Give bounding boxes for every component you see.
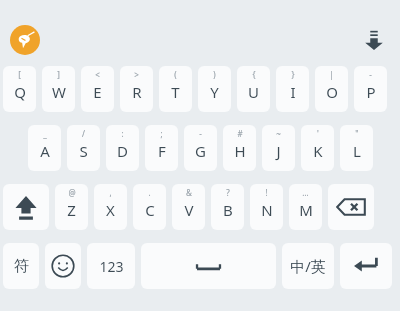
button[interactable]: Enter (340, 243, 392, 289)
staticText: - (369, 69, 372, 80)
button[interactable]: ? (211, 184, 244, 230)
staticText: / (82, 128, 85, 139)
button[interactable]: { (237, 66, 270, 112)
staticText: 符 (14, 257, 29, 276)
button[interactable]: Emoji (45, 243, 81, 289)
staticText: : (121, 128, 124, 139)
button[interactable]: < (81, 66, 114, 112)
staticText: . (148, 187, 151, 198)
button[interactable]: | (315, 66, 348, 112)
button[interactable]: - (184, 125, 217, 171)
staticText: C (145, 200, 155, 220)
staticText: N (261, 200, 273, 220)
staticText: D (117, 141, 128, 161)
button[interactable]: . (133, 184, 166, 230)
staticText: ' (317, 128, 319, 139)
button[interactable]: _ (28, 125, 61, 171)
staticText: # (237, 128, 243, 139)
staticText: _ (43, 128, 47, 139)
staticText: ! (265, 187, 268, 198)
staticText: V (184, 200, 194, 220)
button[interactable]: ( (159, 66, 192, 112)
button[interactable]: App logo (10, 25, 40, 55)
staticText: ] (57, 69, 60, 80)
staticText: ( (174, 69, 177, 80)
staticText: G (195, 141, 206, 161)
button[interactable]: ! (250, 184, 283, 230)
button[interactable]: # (223, 125, 256, 171)
staticText: A (40, 141, 50, 161)
button[interactable]: ~ (262, 125, 295, 171)
staticText: Z (67, 200, 76, 220)
staticText: F (158, 141, 166, 161)
button[interactable]: - (354, 66, 387, 112)
staticText: J (276, 141, 281, 161)
button[interactable]: [ (3, 66, 36, 112)
staticText: I (290, 82, 296, 102)
staticText: … (302, 187, 309, 198)
staticText: W (52, 82, 66, 102)
button[interactable]: : (106, 125, 139, 171)
staticText: K (313, 141, 323, 161)
button[interactable]: @ (55, 184, 88, 230)
button[interactable]: " (340, 125, 373, 171)
staticText: > (134, 69, 139, 80)
staticText: @ (68, 187, 76, 198)
staticText: H (234, 141, 246, 161)
staticText: ) (213, 69, 216, 80)
button[interactable]: ' (301, 125, 334, 171)
button[interactable]: 符 (3, 243, 39, 289)
staticText: E (93, 82, 102, 102)
staticText: ~ (276, 128, 281, 139)
staticText: ; (160, 128, 163, 139)
staticText: P (366, 82, 376, 102)
button[interactable]: Shift (3, 184, 49, 230)
button[interactable]: > (120, 66, 153, 112)
button[interactable]: 中/英 (282, 243, 334, 289)
staticText: } (291, 69, 295, 80)
button[interactable]: … (289, 184, 322, 230)
button[interactable]: ; (145, 125, 178, 171)
button[interactable]: ) (198, 66, 231, 112)
staticText: X (106, 200, 115, 220)
button[interactable]: 123 (87, 243, 135, 289)
button[interactable]: Download (360, 26, 388, 54)
staticText: B (223, 200, 233, 220)
staticText: U (248, 82, 259, 102)
staticText: [ (18, 69, 21, 80)
button[interactable]: & (172, 184, 205, 230)
staticText: M (299, 200, 313, 220)
staticText: S (79, 141, 88, 161)
button[interactable]: } (276, 66, 309, 112)
staticText: & (186, 187, 192, 198)
button[interactable]: , (94, 184, 127, 230)
staticText: < (95, 69, 100, 80)
staticText: | (329, 69, 334, 80)
staticText: - (199, 128, 202, 139)
button[interactable]: / (67, 125, 100, 171)
staticText: 123 (99, 257, 124, 276)
button[interactable]: Space (141, 243, 276, 289)
staticText: 中/英 (290, 256, 326, 276)
button[interactable]: ] (42, 66, 75, 112)
staticText: R (132, 82, 142, 102)
staticText: O (326, 82, 338, 102)
button[interactable]: Backspace (328, 184, 374, 230)
staticText: { (252, 69, 256, 80)
staticText: L (353, 141, 361, 161)
staticText: Y (210, 82, 219, 102)
staticText: ? (226, 187, 230, 198)
staticText: Q (14, 82, 26, 102)
staticText: T (171, 82, 180, 102)
staticText: , (109, 187, 112, 198)
staticText: " (355, 128, 359, 139)
